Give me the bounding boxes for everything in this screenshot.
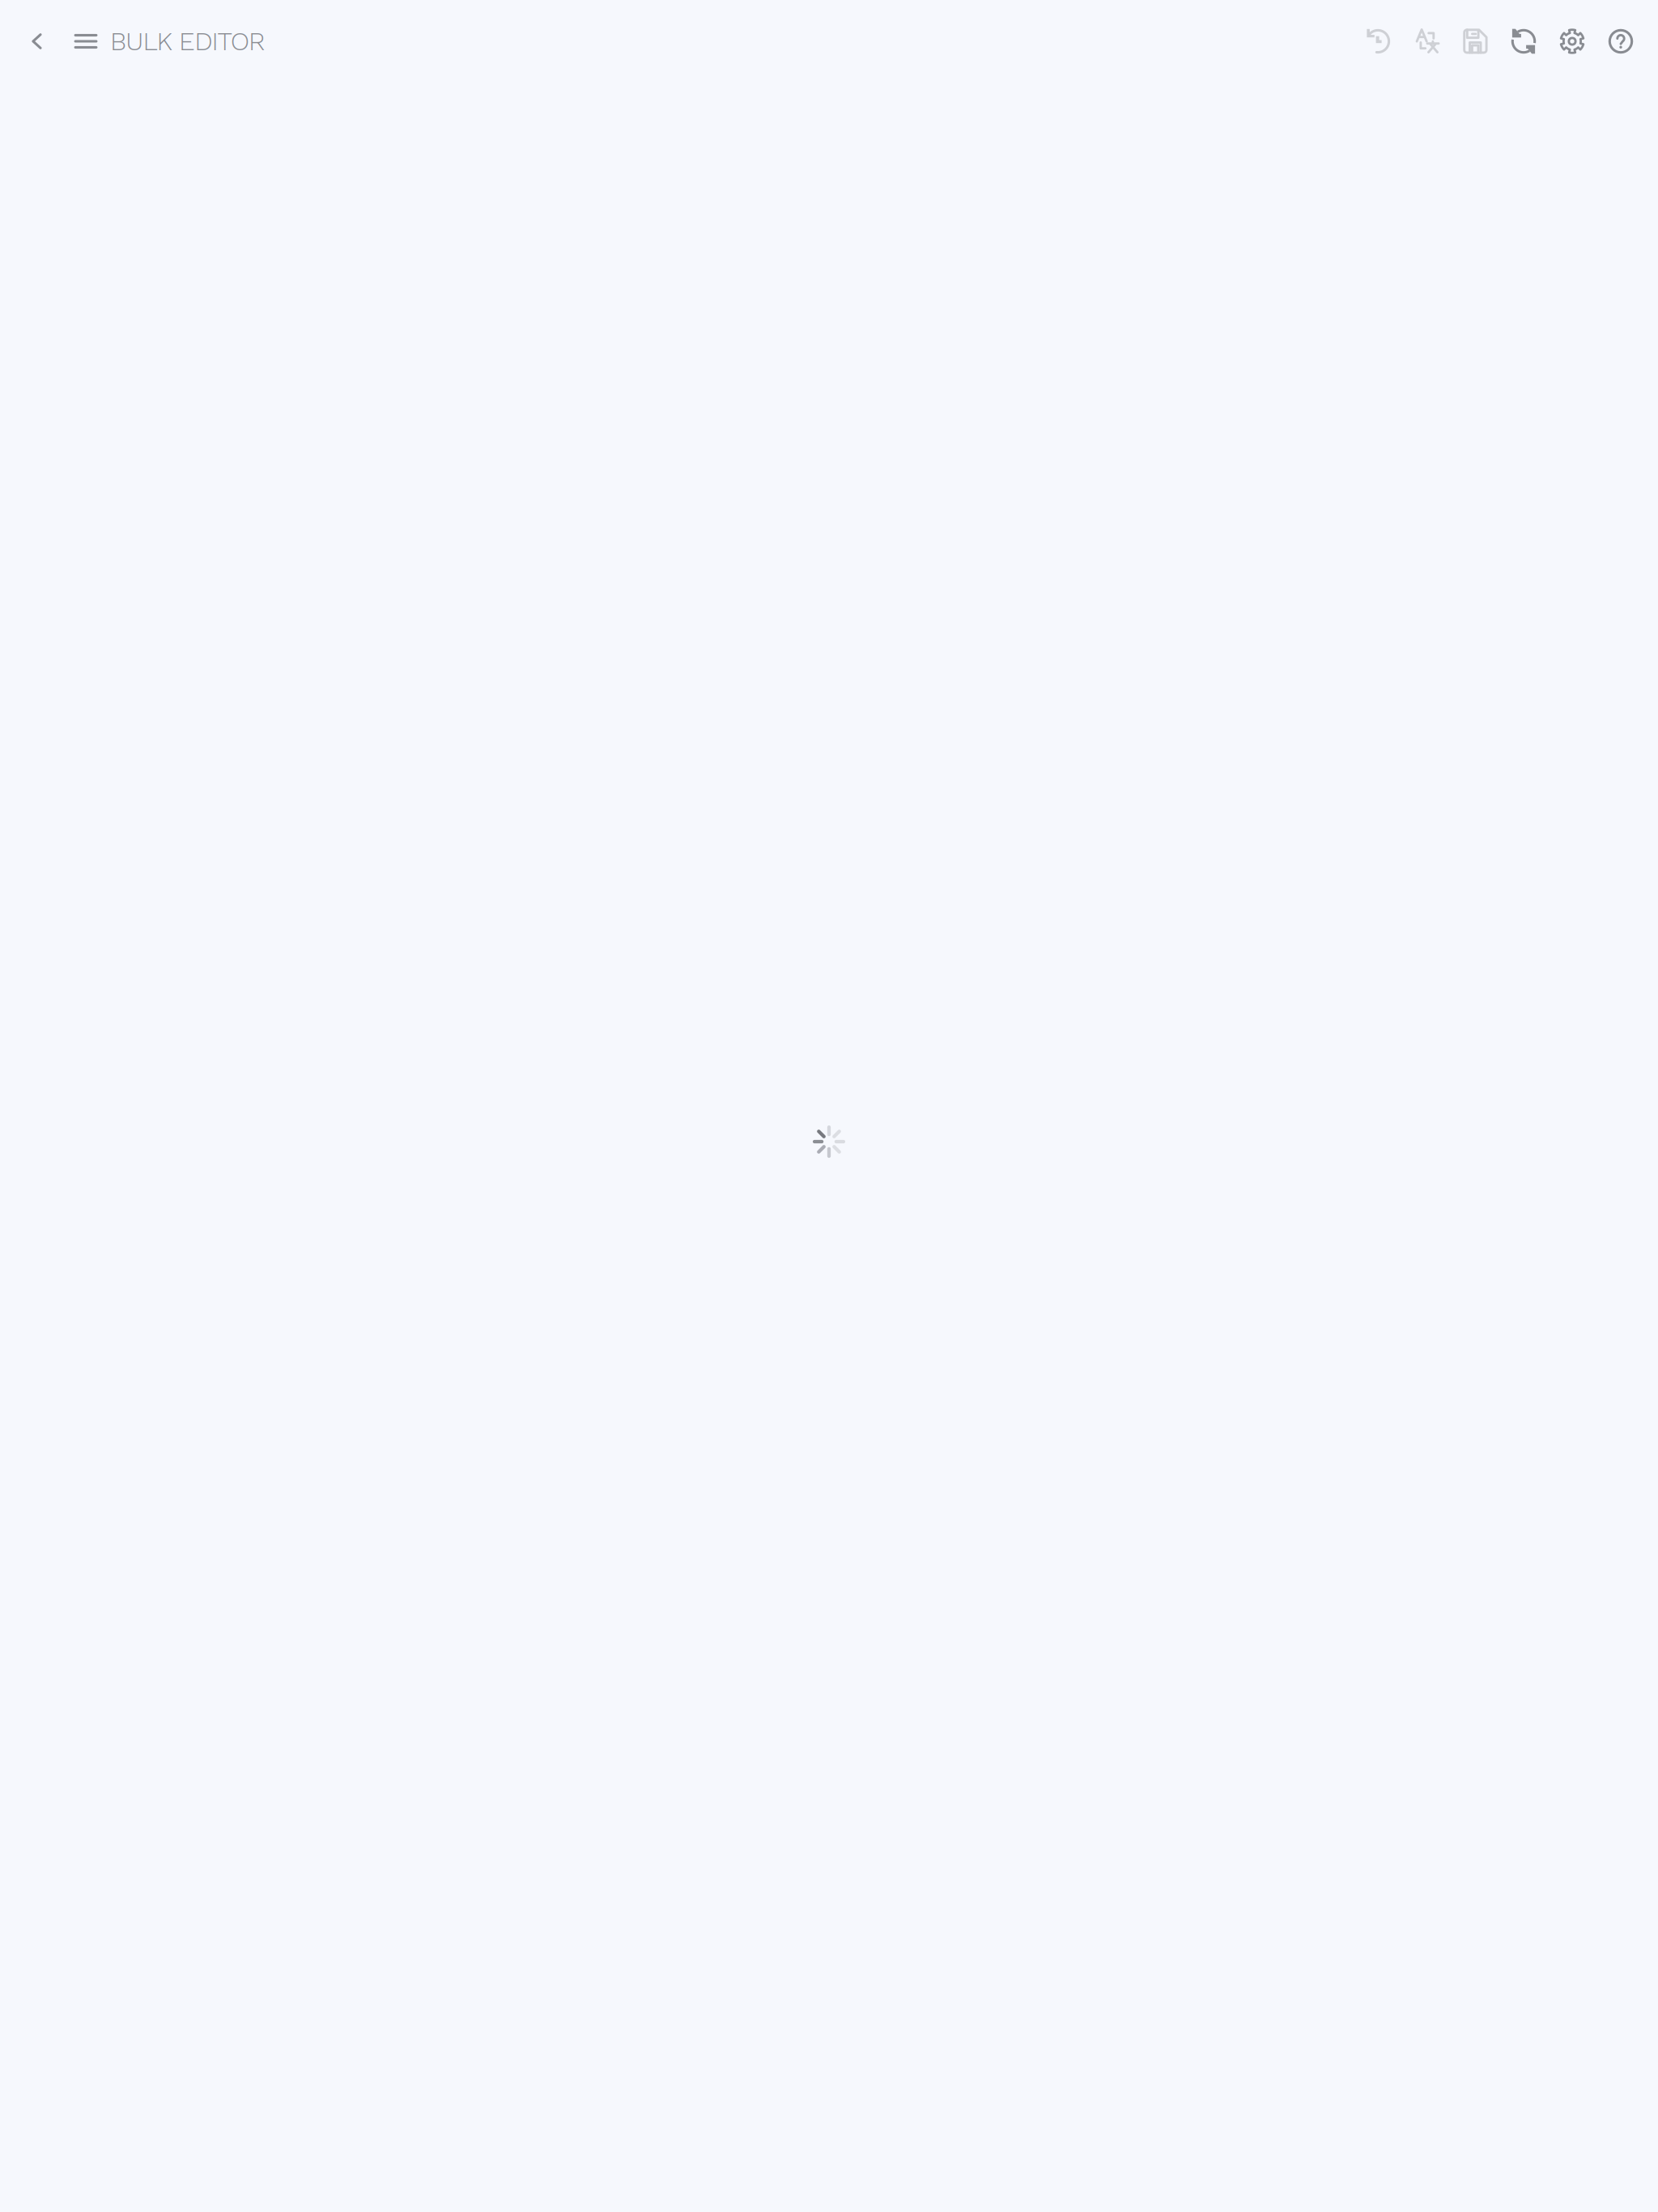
- button[interactable]: Save: [1451, 0, 1499, 83]
- button[interactable]: Help: [1596, 0, 1645, 83]
- button[interactable]: Menu: [62, 0, 110, 83]
- button[interactable]: Translate: [1402, 0, 1451, 83]
- button[interactable]: Sync: [1499, 0, 1548, 83]
- button[interactable]: Settings: [1548, 0, 1596, 83]
- button[interactable]: Back: [13, 0, 62, 83]
- staticText: BULK EDITOR: [110, 26, 265, 56]
- button[interactable]: Undo: [1354, 0, 1402, 83]
